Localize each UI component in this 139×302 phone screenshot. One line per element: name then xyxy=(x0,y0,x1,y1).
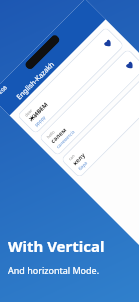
staticText: hello xyxy=(46,129,56,139)
staticText: And horizontal Mode. xyxy=(8,264,100,276)
staticText: English-Kazakh xyxy=(14,60,57,102)
staticText: dear xyxy=(24,108,33,118)
staticText: ЖИВЕМ xyxy=(27,101,50,123)
staticText: With Vertical xyxy=(8,236,105,256)
button[interactable]: Back xyxy=(5,99,16,110)
staticText: 4:08 xyxy=(0,84,9,96)
button[interactable]: hello xyxy=(38,48,139,156)
staticText: рррру xyxy=(33,113,47,127)
button[interactable]: can xyxy=(60,70,139,178)
button[interactable]: dear xyxy=(17,26,125,135)
staticText: сәлеметсіз xyxy=(55,128,76,149)
staticText: сәлем xyxy=(49,126,68,145)
staticText: can xyxy=(67,153,76,161)
staticText: келу xyxy=(71,151,87,167)
staticText: бара xyxy=(77,159,89,171)
